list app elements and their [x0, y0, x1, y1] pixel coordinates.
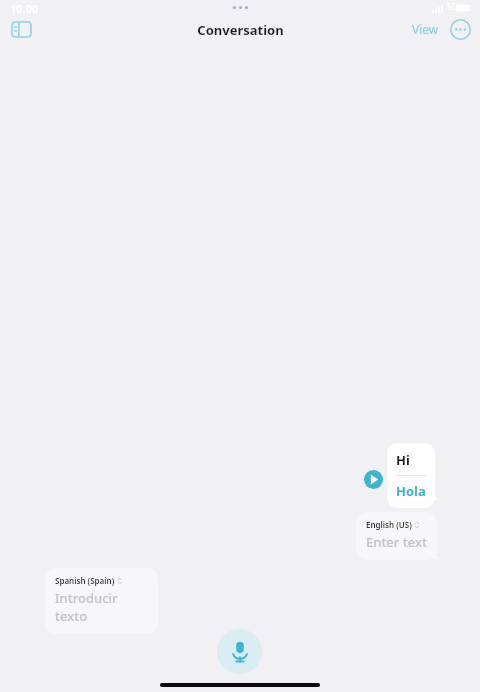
- staticText: View: [412, 21, 439, 37]
- staticText: Enter text: [366, 533, 427, 551]
- button[interactable]: Record voice: [217, 629, 262, 674]
- button[interactable]: English (US): [356, 512, 437, 560]
- staticText: Hola: [396, 482, 426, 500]
- button[interactable]: View: [410, 19, 441, 39]
- button[interactable]: More options: [449, 18, 472, 41]
- staticText: Spanish (Spain): [55, 575, 115, 586]
- button[interactable]: Spanish (Spain): [45, 568, 158, 634]
- button[interactable]: Play translation: [364, 470, 383, 489]
- staticText: Hi: [396, 451, 410, 469]
- button[interactable]: Toggle sidebar: [8, 16, 34, 42]
- staticText: English (US): [366, 519, 412, 530]
- staticText: 10:00: [10, 1, 39, 16]
- staticText: Introducir texto: [55, 589, 150, 625]
- staticText: Conversation: [197, 21, 284, 39]
- staticText: 5G: [447, 1, 458, 12]
- button[interactable]: Hi: [387, 443, 435, 508]
